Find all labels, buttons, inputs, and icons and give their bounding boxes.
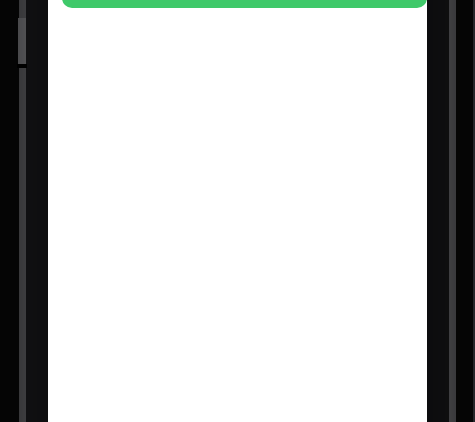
button[interactable]: App bar bbox=[62, 0, 427, 8]
